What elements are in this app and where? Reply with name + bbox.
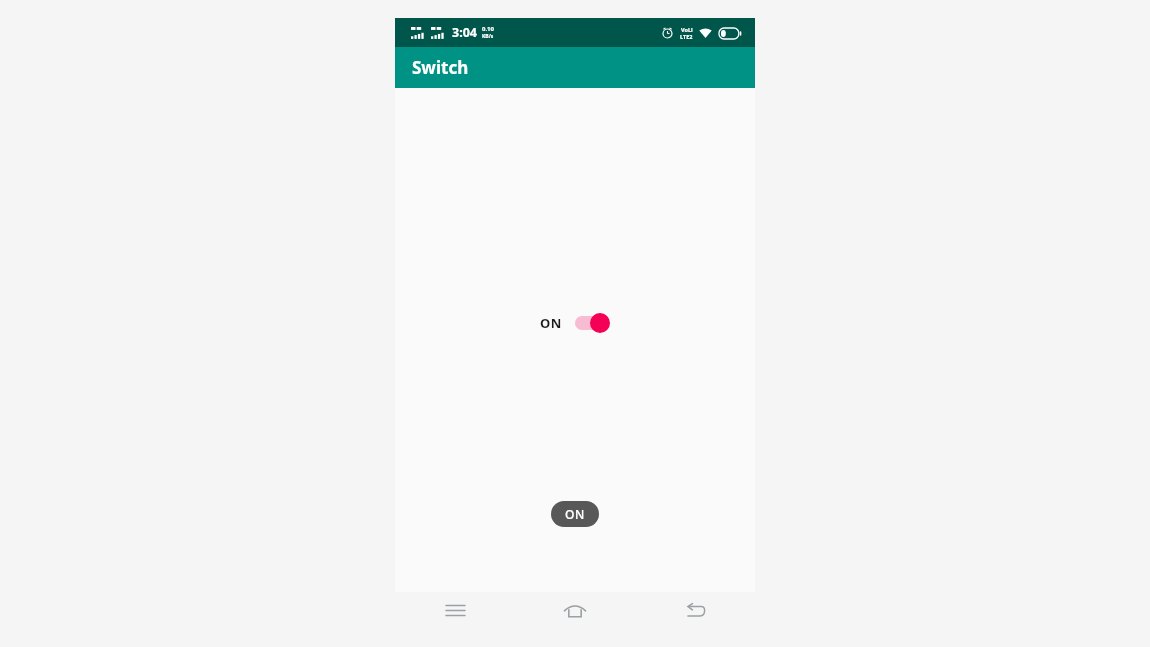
staticText: Switch	[412, 56, 469, 79]
button[interactable]: Back	[635, 592, 755, 629]
button[interactable]: ON	[551, 501, 599, 527]
button[interactable]: ON	[536, 309, 614, 337]
staticText: ON	[565, 506, 585, 522]
staticText: KB/s	[482, 33, 494, 40]
staticText: 0.10	[482, 25, 494, 33]
staticText: ON	[540, 314, 562, 332]
button[interactable]: Home	[515, 592, 635, 629]
button[interactable]: Recent apps	[395, 592, 515, 629]
staticText: LTE2	[680, 33, 693, 40]
staticText: 3:04	[452, 24, 477, 41]
staticText: VoLl	[681, 26, 693, 33]
